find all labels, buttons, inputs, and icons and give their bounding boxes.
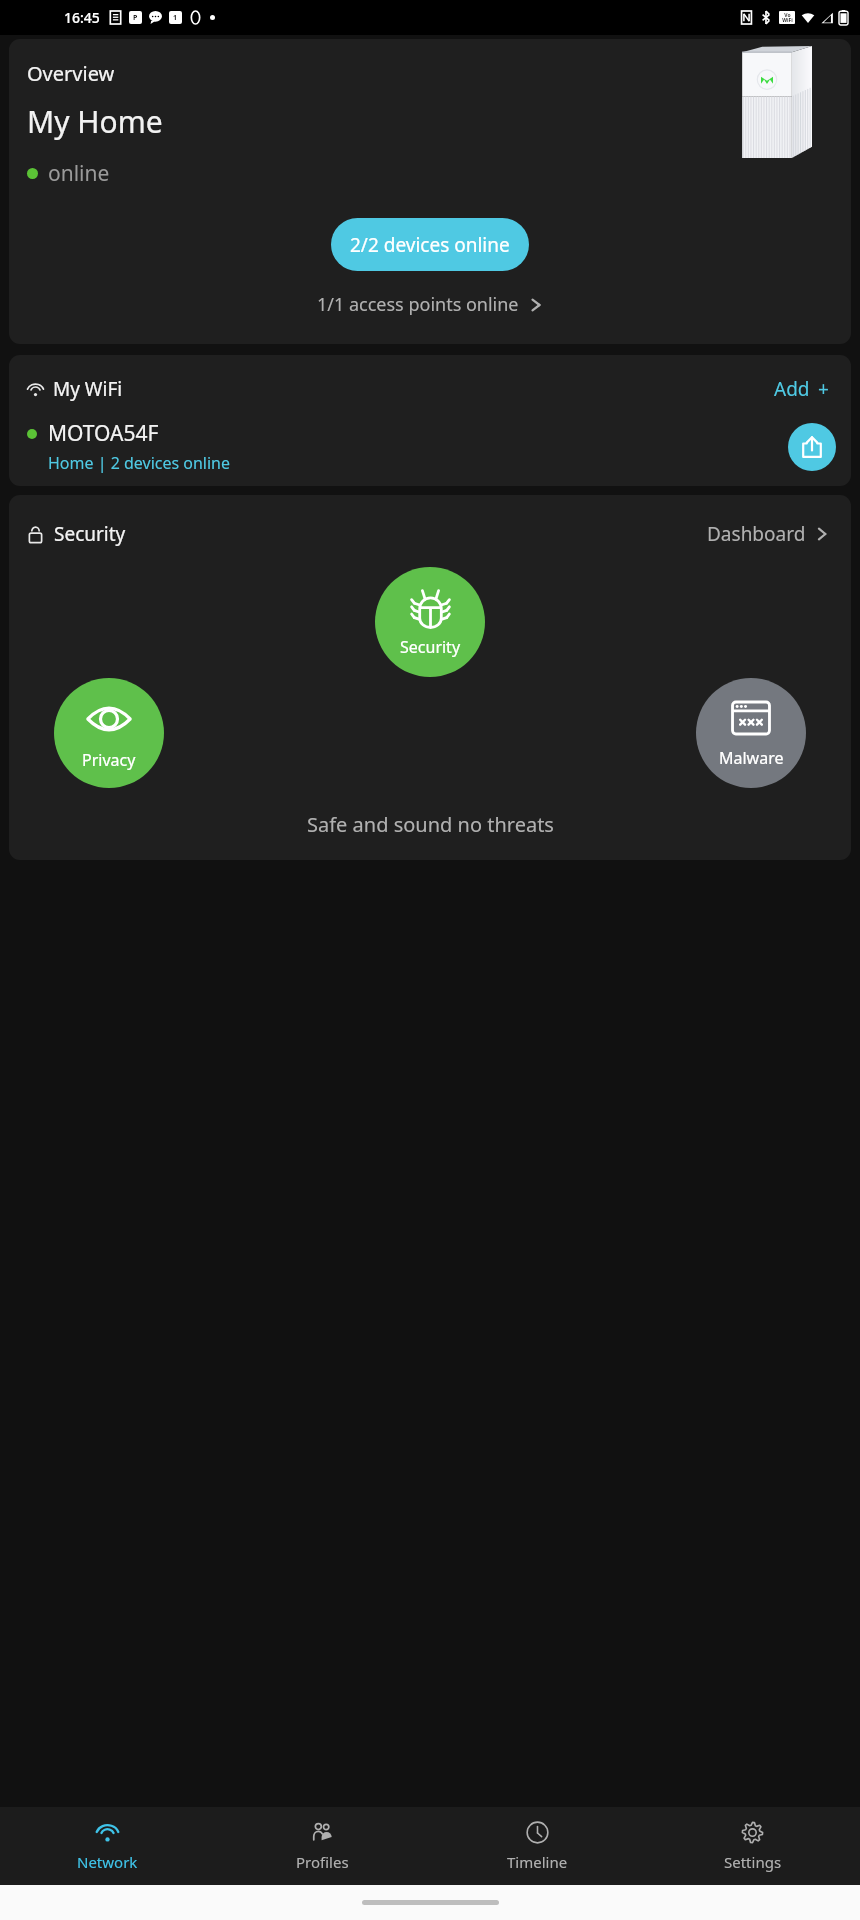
staticText: Dashboard: [707, 521, 806, 547]
staticText: My WiFi: [53, 376, 123, 402]
button[interactable]: Security: [375, 567, 485, 677]
staticText: Malware: [719, 747, 784, 769]
staticText: MOTOA54F: [48, 419, 159, 448]
button[interactable]: Settings: [645, 1807, 860, 1885]
staticText: Safe and sound no threats: [307, 811, 554, 838]
staticText: P: [133, 13, 138, 23]
staticText: Overview: [27, 60, 115, 87]
button[interactable]: Privacy: [54, 678, 164, 788]
button[interactable]: Add: [770, 374, 833, 404]
staticText: Profiles: [296, 1852, 349, 1872]
staticText: +: [818, 376, 829, 402]
button[interactable]: Malware: [696, 678, 806, 788]
button[interactable]: Overview: [9, 39, 851, 344]
staticText: Privacy: [82, 749, 136, 771]
staticText: 1: [173, 13, 178, 23]
staticText: Network: [77, 1852, 138, 1872]
staticText: 1/1 access points online: [317, 292, 519, 317]
staticText: Add: [774, 376, 810, 402]
staticText: My Home: [27, 101, 163, 142]
button[interactable]: Timeline: [430, 1807, 645, 1885]
staticText: Security: [54, 521, 126, 547]
button[interactable]: Network: [0, 1807, 215, 1885]
staticText: Settings: [724, 1852, 782, 1872]
staticText: Vo WiFi: [782, 12, 793, 23]
button[interactable]: Profiles: [215, 1807, 430, 1885]
button[interactable]: MOTOA54F: [27, 419, 788, 474]
staticText: online: [48, 159, 110, 188]
staticText: Security: [400, 636, 461, 658]
button[interactable]: 2/2 devices online: [331, 218, 529, 271]
button[interactable]: Share WiFi: [788, 423, 836, 471]
staticText: Timeline: [507, 1852, 568, 1872]
staticText: Home | 2 devices online: [48, 452, 231, 474]
button[interactable]: 1/1 access points online: [311, 289, 549, 320]
button[interactable]: Dashboard: [703, 518, 833, 550]
staticText: 16:45: [64, 8, 100, 27]
staticText: 2/2 devices online: [350, 232, 510, 258]
